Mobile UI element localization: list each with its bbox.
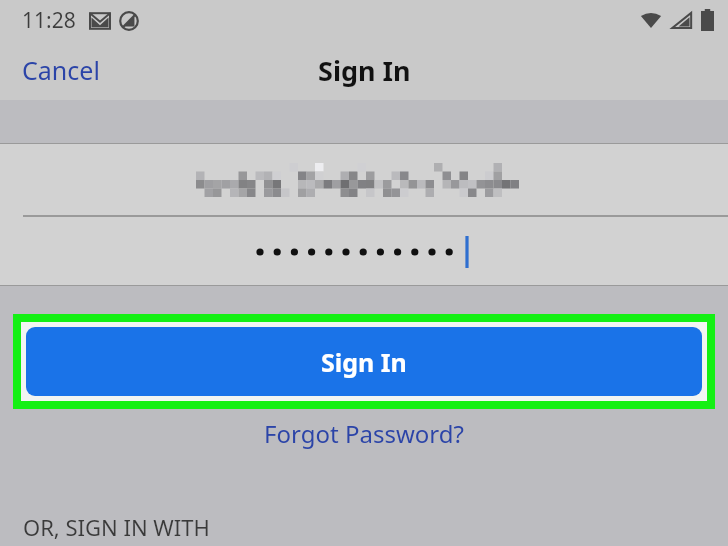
staticText: Sign In [321,345,407,379]
staticText: 11:28 [22,6,76,35]
staticText: Forgot Password? [264,417,464,450]
staticText: OR, SIGN IN WITH [23,512,210,542]
button[interactable] [0,144,728,215]
staticText: Cancel [22,53,100,87]
button[interactable]: Sign In [26,327,702,396]
button[interactable]: Forgot Password? [250,413,478,454]
staticText: Sign In [318,52,411,89]
button[interactable]: Cancel [0,47,112,93]
button[interactable] [0,217,728,285]
